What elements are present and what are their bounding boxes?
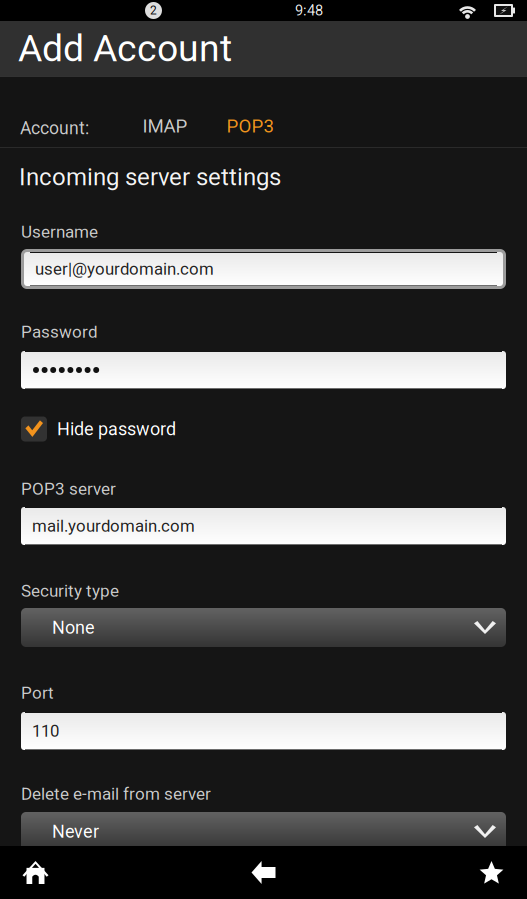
staticText: Port [21,683,54,703]
staticText: Add Account [18,27,232,70]
staticText: None [52,617,95,638]
button[interactable]: mail.yourdomain.com [21,507,506,545]
staticText: mail.yourdomain.com [32,516,195,536]
button[interactable]: Back [228,846,299,899]
staticText: 2 [150,3,157,18]
staticText: Username [21,222,98,242]
staticText: Security type [21,581,119,601]
button[interactable]: Favorites [456,846,527,899]
button[interactable]: IMAP [133,106,197,146]
button[interactable]: Never [21,812,506,851]
button[interactable]: 110 [21,712,506,750]
staticText: POP3 [226,115,273,137]
button[interactable]: Home [0,846,71,899]
staticText: 9:48 [295,2,323,19]
staticText: Hide password [57,418,176,440]
button[interactable]: None [21,608,506,647]
staticText: 110 [32,721,59,741]
button[interactable]: Hide password [21,416,506,442]
button[interactable]: user|@yourdomain.com [21,249,506,289]
staticText: Account: [20,118,89,139]
staticText: Password [21,322,98,342]
button[interactable]: POP3 [216,106,284,146]
staticText: Never [52,821,99,842]
staticText: Delete e-mail from server [21,784,211,804]
staticText: IMAP [142,115,187,137]
staticText: Incoming server settings [19,163,281,191]
staticText: user|@yourdomain.com [35,259,214,279]
button[interactable] [21,351,506,389]
staticText: POP3 server [21,479,116,499]
